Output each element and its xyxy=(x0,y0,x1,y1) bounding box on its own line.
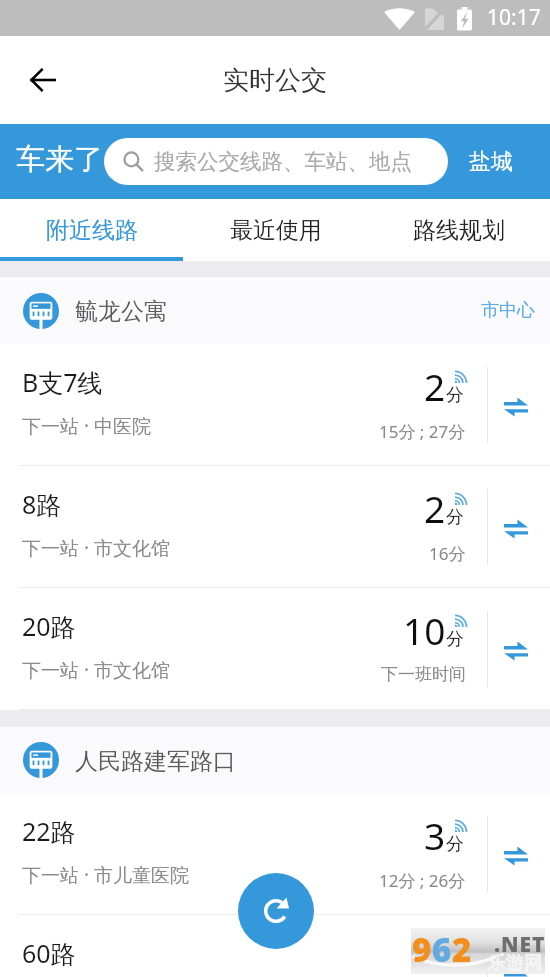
staticText: 22路 xyxy=(22,814,76,848)
staticText: 分 xyxy=(446,506,464,529)
staticText: 2 xyxy=(452,927,472,972)
staticText: 15分 ; 27分 xyxy=(379,420,466,443)
staticText: 10 xyxy=(403,605,446,655)
staticText: 12分 ; 26分 xyxy=(379,869,466,892)
button[interactable]: 毓龙公寓 xyxy=(0,277,550,344)
staticText: 实时公交 xyxy=(223,64,327,97)
button[interactable]: Switch direction xyxy=(495,957,537,977)
staticText: 盐城 xyxy=(469,148,513,176)
button[interactable]: Switch direction xyxy=(495,835,537,877)
staticText: 9 xyxy=(412,927,432,972)
staticText: B支7线 xyxy=(22,365,103,399)
staticText: 人民路建军路口 xyxy=(75,747,236,776)
button[interactable]: 附近线路 xyxy=(0,199,184,257)
staticText: 下一站 · 市儿童医院 xyxy=(22,862,189,888)
button[interactable]: Switch direction xyxy=(495,508,537,550)
staticText: 分 xyxy=(446,955,464,977)
staticText: 路线规划 xyxy=(413,216,505,245)
button[interactable]: Back xyxy=(19,56,67,104)
staticText: .NET xyxy=(494,930,546,959)
button[interactable]: Switch direction xyxy=(495,386,537,428)
staticText: 5 xyxy=(424,932,446,977)
staticText: 6 xyxy=(432,927,452,972)
staticText: 下一站 · 市文化馆 xyxy=(22,535,170,561)
button[interactable]: 8路 xyxy=(0,466,550,588)
staticText: 乐游网 xyxy=(488,952,542,975)
staticText: 8路 xyxy=(22,487,62,521)
staticText: 10:17 xyxy=(487,3,541,32)
button[interactable]: 22路 xyxy=(0,793,550,915)
staticText: 2 xyxy=(424,483,446,533)
staticText: 最近使用 xyxy=(230,216,322,245)
button[interactable]: 人民路建军路口 xyxy=(0,727,550,793)
staticText: 搜索公交线路、车站、地点 xyxy=(154,148,412,175)
button[interactable]: 路线规划 xyxy=(367,199,550,257)
button[interactable]: 盐城 xyxy=(455,138,550,186)
button[interactable]: 20路 xyxy=(0,588,550,710)
staticText: 分 xyxy=(446,628,464,651)
button[interactable]: Refresh xyxy=(238,873,314,949)
staticText: 市中心 xyxy=(481,299,535,322)
staticText: 16分 xyxy=(429,542,466,565)
button[interactable]: 搜索公交线路、车站、地点 xyxy=(104,138,448,185)
staticText: 下一站 · 市文化馆 xyxy=(22,657,170,683)
staticText: 车来了 xyxy=(16,141,103,178)
staticText: 附近线路 xyxy=(46,216,138,245)
button[interactable]: Switch direction xyxy=(495,630,537,672)
staticText: 下一站 · 中医院 xyxy=(22,413,151,439)
staticText: 60路 xyxy=(22,936,76,970)
staticText: 20路 xyxy=(22,609,76,643)
staticText: 下一班时间 xyxy=(381,664,466,685)
staticText: 分 xyxy=(446,384,464,407)
staticText: 毓龙公寓 xyxy=(75,297,167,326)
button[interactable]: B支7线 xyxy=(0,344,550,466)
staticText: 分 xyxy=(446,833,464,856)
staticText: 2 xyxy=(424,361,446,411)
staticText: 3 xyxy=(424,810,446,860)
button[interactable]: 最近使用 xyxy=(184,199,367,257)
